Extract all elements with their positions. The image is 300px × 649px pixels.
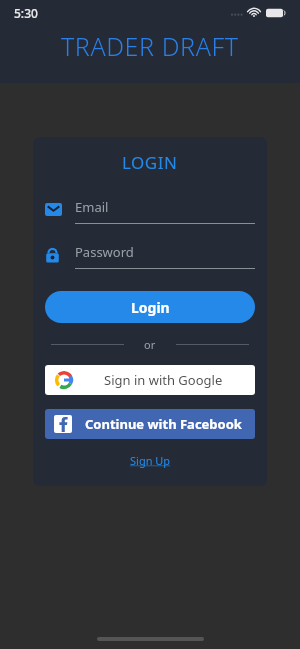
other: Email <box>45 203 62 216</box>
staticText: LOGIN <box>122 151 178 174</box>
other: Password <box>45 246 60 263</box>
staticText: Password <box>75 243 134 261</box>
button[interactable]: Sign Up <box>126 451 175 470</box>
staticText: Email <box>75 198 109 216</box>
button[interactable]: Login <box>45 291 255 323</box>
staticText: Login <box>131 298 170 317</box>
button[interactable]: Sign in with Google <box>45 365 255 395</box>
staticText: or <box>144 337 156 352</box>
staticText: Sign in with Google <box>104 371 223 389</box>
staticText: Sign Up <box>130 453 171 468</box>
button[interactable]: Continue with Facebook <box>45 409 255 439</box>
staticText: 5:30 <box>14 5 38 21</box>
staticText: TRADER DRAFT <box>61 29 239 63</box>
button[interactable]: Email <box>45 198 255 224</box>
staticText: Continue with Facebook <box>85 415 242 433</box>
button[interactable]: Password <box>45 243 255 269</box>
